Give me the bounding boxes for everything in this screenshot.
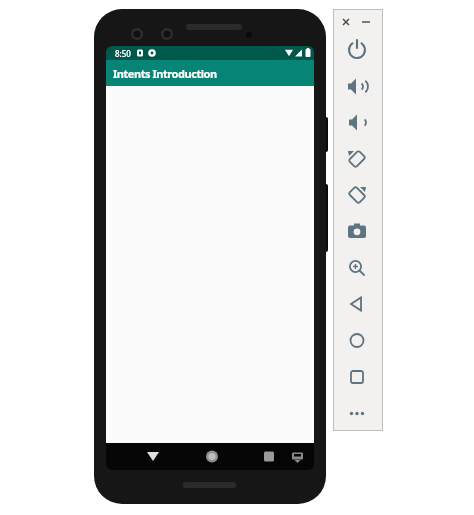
button[interactable] bbox=[359, 14, 373, 28]
button[interactable] bbox=[343, 288, 371, 316]
button[interactable] bbox=[343, 180, 371, 208]
button[interactable] bbox=[339, 14, 353, 28]
button[interactable] bbox=[253, 445, 283, 469]
button[interactable] bbox=[343, 144, 371, 172]
button[interactable] bbox=[343, 72, 371, 100]
button[interactable] bbox=[197, 445, 227, 469]
staticText: Intents Introduction bbox=[113, 66, 217, 81]
button[interactable] bbox=[138, 445, 168, 469]
button[interactable] bbox=[343, 36, 371, 64]
button[interactable] bbox=[343, 396, 371, 424]
button[interactable] bbox=[343, 216, 371, 244]
button[interactable] bbox=[343, 324, 371, 352]
button[interactable]: Intents Introduction bbox=[106, 60, 314, 86]
button[interactable] bbox=[343, 108, 371, 136]
button[interactable] bbox=[286, 445, 310, 469]
button[interactable] bbox=[343, 360, 371, 388]
staticText: 8:50 bbox=[115, 48, 131, 59]
button[interactable] bbox=[343, 252, 371, 280]
